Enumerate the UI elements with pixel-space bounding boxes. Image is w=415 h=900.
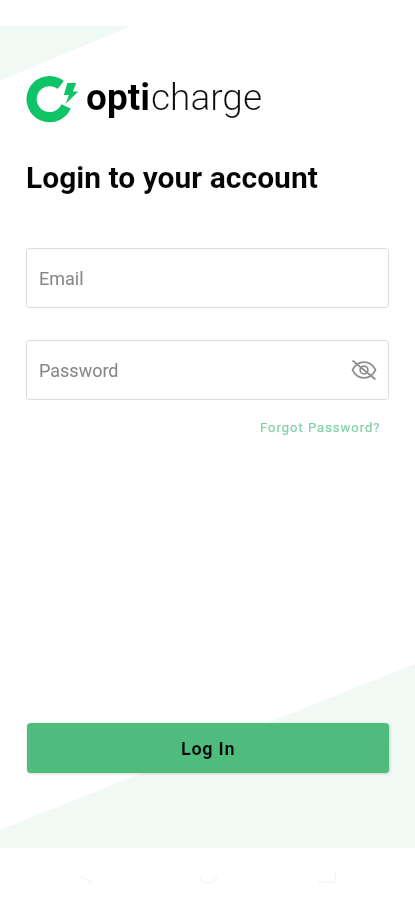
staticText: Password (39, 360, 119, 381)
staticText: opti (86, 76, 151, 119)
staticText: Log In (181, 738, 236, 759)
button[interactable]: Show password (346, 352, 382, 388)
staticText: charge (151, 76, 263, 119)
staticText: Email (39, 268, 84, 289)
button[interactable]: Log In (27, 723, 389, 773)
button[interactable]: Forgot Password? (260, 420, 381, 435)
staticText: Login to your account (26, 160, 318, 195)
other: opticharge logo (26, 74, 82, 124)
button[interactable]: Password (26, 340, 389, 400)
button[interactable]: Email (26, 248, 389, 308)
